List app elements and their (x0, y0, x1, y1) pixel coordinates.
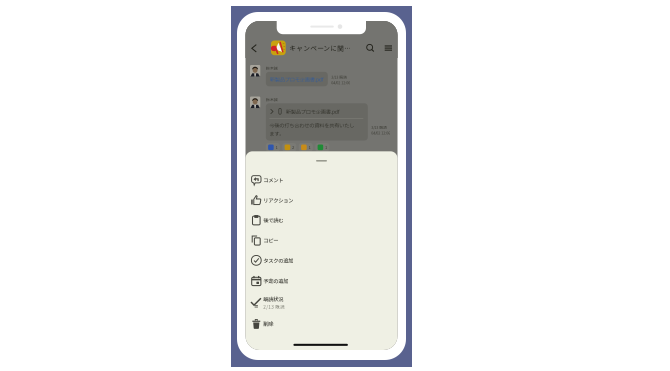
staticText: 鈴木誠 (266, 96, 278, 102)
staticText: 3/13 既読 (371, 125, 387, 130)
staticText: リアクション (263, 196, 293, 204)
staticText: 1 (325, 144, 327, 150)
staticText: ます。 (269, 130, 284, 137)
staticText: 1 (308, 144, 310, 150)
staticText: 削除 (263, 320, 273, 328)
button[interactable]: リアクション (245, 190, 397, 210)
button[interactable]: コピー (245, 230, 397, 250)
button[interactable]: 2 (282, 143, 296, 152)
button[interactable]: コメント (245, 170, 397, 190)
staticText: コピー (263, 236, 278, 244)
button[interactable]: Search (367, 44, 375, 52)
button[interactable]: キャンペーンに関… (271, 40, 351, 55)
button[interactable]: タスクの追加 (245, 250, 397, 270)
staticText: 1 (275, 144, 277, 150)
button[interactable]: 後で読む (245, 210, 397, 230)
staticText: 3/13 既読 (331, 74, 347, 80)
button[interactable]: 削除 (245, 314, 397, 334)
staticText: 鈴木誠 (266, 65, 278, 71)
staticText: 04/02 12:06 (331, 80, 350, 85)
button[interactable]: Menu (385, 45, 392, 51)
staticText: 予定の追加 (263, 277, 288, 285)
button[interactable]: 予定の追加 (245, 270, 397, 291)
staticText: 2/13 既読 (263, 303, 285, 310)
staticText: 今後の打ち合わせの資料を共有いたし (269, 121, 354, 129)
staticText: 2 (292, 144, 294, 150)
button[interactable]: 既読状況 (245, 291, 397, 314)
button[interactable]: 1 (299, 143, 313, 152)
button[interactable]: 1 (315, 143, 329, 152)
staticText: タスクの追加 (263, 256, 293, 264)
staticText: コメント (263, 176, 283, 184)
staticText: 後で読む (263, 216, 283, 224)
staticText: 新製品プロモ企画書.pdf (286, 108, 340, 115)
staticText: キャンペーンに関… (289, 43, 351, 53)
button[interactable]: 1 (266, 143, 280, 152)
staticText: 既読状況 (263, 295, 283, 303)
staticText: 04/02 12:06 (371, 130, 390, 135)
staticText: 新製品プロモ企画書.pdf (270, 75, 324, 83)
button[interactable]: Back (248, 42, 261, 55)
